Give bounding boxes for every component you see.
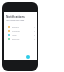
staticText: Battery running low — [12, 26, 22, 29]
staticText: You have four new alerts from today — [6, 19, 27, 22]
staticText: New message arrived — [12, 34, 22, 37]
button[interactable]: Compose — [26, 55, 30, 59]
button[interactable]: Storage almost full — [4, 29, 37, 33]
staticText: Storage almost full — [12, 30, 22, 33]
button[interactable]: New message arrived — [4, 33, 37, 37]
staticText: Backup completed ok — [12, 38, 22, 41]
button[interactable]: Battery running low — [4, 25, 37, 29]
button[interactable]: Backup completed ok — [4, 37, 37, 41]
staticText: Notifications — [6, 15, 25, 19]
